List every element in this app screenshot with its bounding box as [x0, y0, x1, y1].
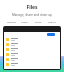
staticText: Search: [45, 20, 59, 23]
button[interactable]: Share: [31, 20, 45, 23]
button[interactable]: Browse: [5, 20, 18, 23]
staticText: Manage, share and clean up: [0, 13, 64, 17]
button[interactable]: [47, 33, 55, 36]
staticText: Files: [0, 4, 64, 11]
button[interactable]: [4, 42, 60, 47]
staticText: Share: [31, 20, 45, 23]
button[interactable]: [4, 47, 60, 52]
staticText: Clean: [18, 20, 31, 23]
button[interactable]: [4, 57, 60, 62]
button[interactable]: [4, 62, 60, 67]
button[interactable]: [4, 52, 60, 57]
button[interactable]: Clean: [18, 20, 31, 23]
button[interactable]: Search: [45, 20, 59, 23]
button[interactable]: [4, 37, 60, 42]
staticText: Browse: [5, 20, 18, 23]
